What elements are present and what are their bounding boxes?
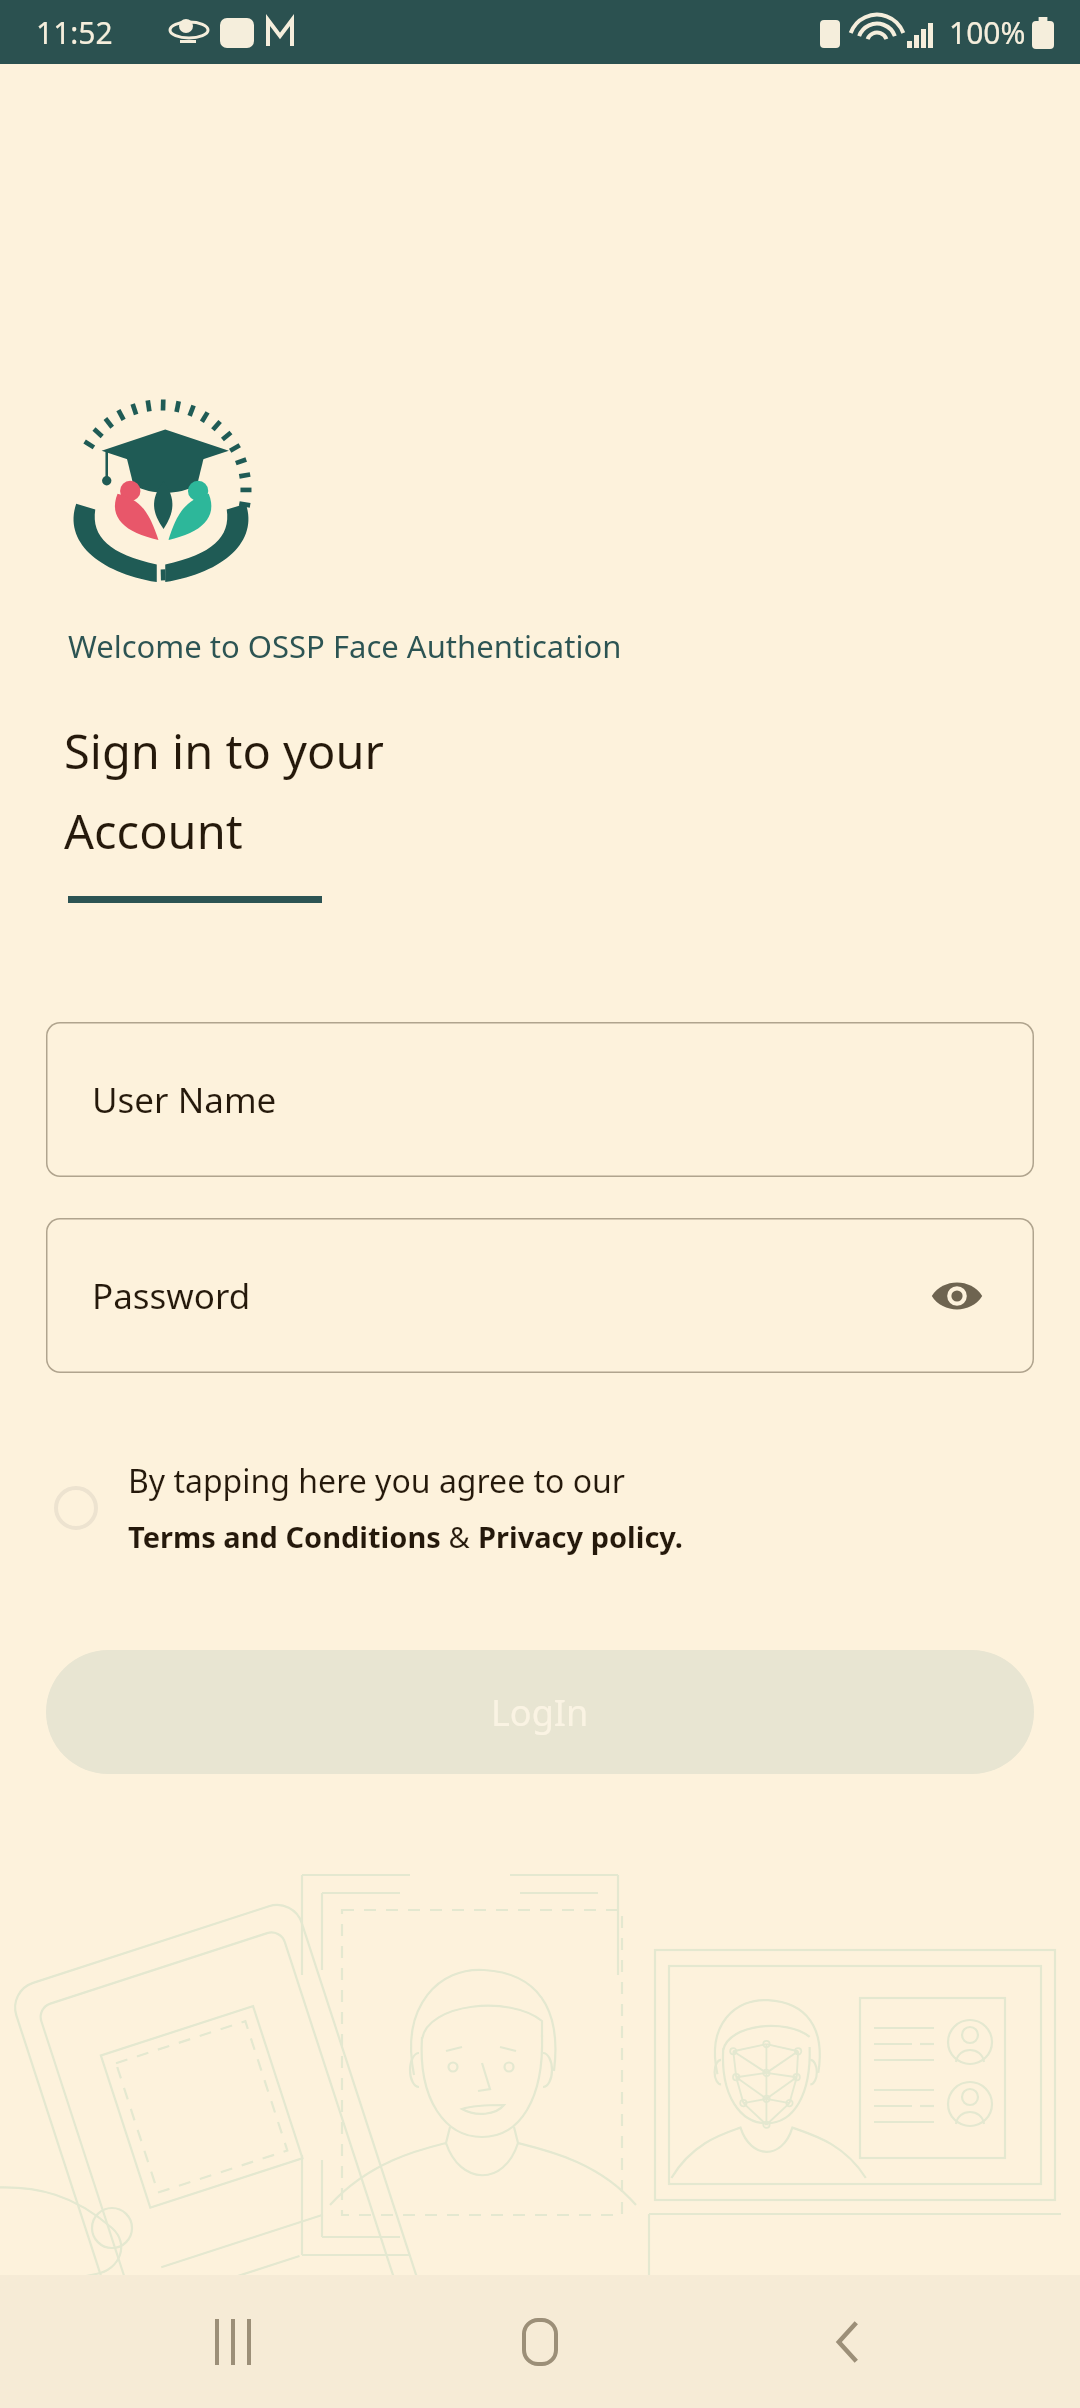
staticText: Welcome to OSSP Face Authentication <box>68 625 622 667</box>
button[interactable]: Home <box>465 2275 615 2408</box>
button[interactable]: Show password <box>922 1261 992 1331</box>
staticText: 100% <box>949 12 1026 53</box>
staticText: Sign in to your Account <box>64 719 384 863</box>
button[interactable]: Back <box>773 2275 923 2408</box>
button[interactable]: By tapping here you agree to our <box>46 1440 1036 1575</box>
staticText: User Name <box>92 1076 277 1124</box>
button[interactable]: Recent apps <box>158 2275 308 2408</box>
button[interactable]: LogIn <box>46 1650 1034 1774</box>
staticText: & <box>441 1517 478 1556</box>
button[interactable]: Password <box>46 1218 1034 1373</box>
staticText: Terms and Conditions <box>128 1517 441 1556</box>
staticText: Password <box>92 1272 251 1320</box>
staticText: LogIn <box>491 1688 589 1737</box>
staticText: Privacy policy. <box>478 1517 683 1556</box>
staticText: 11:52 <box>36 12 113 53</box>
button[interactable]: User Name <box>46 1022 1034 1177</box>
staticText: By tapping here you agree to our <box>128 1459 626 1503</box>
